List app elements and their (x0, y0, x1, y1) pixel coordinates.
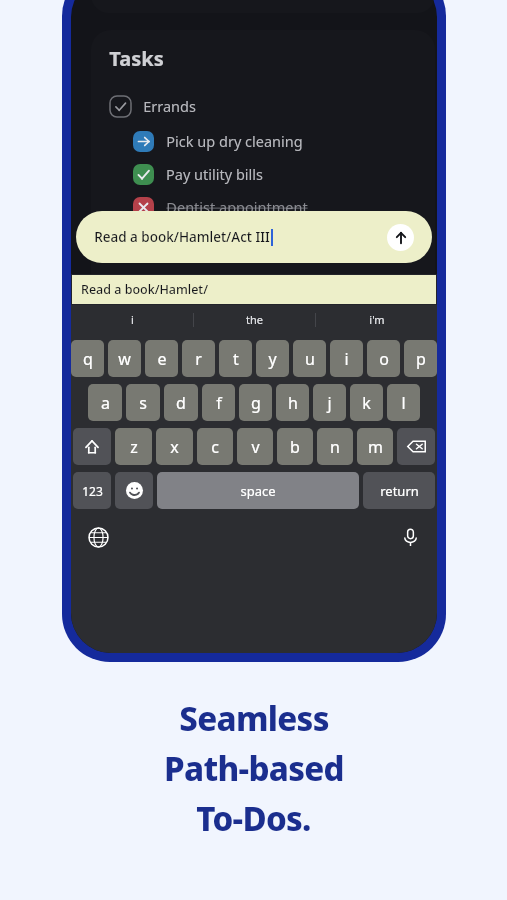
staticText: d (176, 392, 186, 414)
staticText: Errands (143, 96, 196, 116)
staticText: h (288, 392, 298, 414)
button[interactable]: r (182, 340, 215, 377)
button[interactable]: p (404, 340, 437, 377)
staticText: Tasks (109, 45, 164, 72)
button[interactable]: Emoji (115, 472, 153, 509)
staticText: the (246, 312, 263, 327)
button[interactable]: j (313, 384, 346, 421)
staticText: f (216, 392, 222, 414)
staticText: Seamless (179, 696, 329, 741)
button[interactable]: Submit task (387, 224, 414, 251)
staticText: z (130, 436, 138, 458)
button[interactable]: k (350, 384, 383, 421)
staticText: s (139, 392, 147, 414)
staticText: x (170, 436, 179, 458)
button[interactable]: w (108, 340, 141, 377)
staticText: Read a book/Hamlet/Act III (94, 228, 270, 246)
staticText: Pay utility bills (166, 164, 263, 184)
staticText: b (290, 436, 300, 458)
staticText: n (330, 436, 340, 458)
button[interactable]: g (239, 384, 272, 421)
staticText: c (211, 436, 219, 458)
staticText: space (240, 482, 276, 500)
button[interactable]: c (197, 428, 233, 465)
button[interactable]: q (71, 340, 104, 377)
staticText: return (380, 482, 419, 500)
button[interactable]: Backspace (397, 428, 435, 465)
button[interactable]: l (387, 384, 420, 421)
button[interactable]: return (363, 472, 435, 509)
staticText: Pick up dry cleaning (166, 131, 303, 151)
button[interactable]: i'm (316, 305, 437, 334)
button[interactable]: Errands (109, 95, 421, 117)
button[interactable]: space (157, 472, 359, 509)
button[interactable]: b (277, 428, 313, 465)
staticText: i'm (369, 312, 385, 327)
staticText: Read a book/Hamlet/ (81, 281, 208, 298)
button[interactable]: the (194, 305, 315, 334)
button[interactable]: Shift (73, 428, 111, 465)
button[interactable]: Pick up dry cleaning (132, 130, 421, 152)
button[interactable]: d (164, 384, 198, 421)
staticText: r (195, 348, 202, 370)
button[interactable]: z (115, 428, 152, 465)
button[interactable]: f (202, 384, 235, 421)
button[interactable]: i (71, 305, 193, 334)
staticText: m (368, 436, 383, 458)
button[interactable]: h (276, 384, 309, 421)
button[interactable]: n (317, 428, 353, 465)
staticText: 123 (82, 483, 103, 499)
button[interactable]: s (126, 384, 160, 421)
button[interactable]: Change keyboard (83, 522, 113, 552)
staticText: i (131, 312, 134, 327)
staticText: o (379, 348, 389, 370)
staticText: q (83, 348, 93, 370)
staticText: a (101, 392, 110, 414)
staticText: p (416, 348, 426, 370)
button[interactable]: 123 (73, 472, 111, 509)
staticText: e (157, 348, 167, 370)
button[interactable]: t (219, 340, 252, 377)
button[interactable]: Read a book/Hamlet/Act III (76, 211, 432, 263)
button[interactable]: x (156, 428, 193, 465)
staticText: Fitness goals (166, 230, 254, 250)
staticText: t (233, 348, 239, 370)
button[interactable]: u (293, 340, 326, 377)
button[interactable]: Fitness goals (132, 229, 421, 251)
button[interactable]: o (367, 340, 400, 377)
staticText: w (118, 348, 131, 370)
staticText: v (251, 436, 260, 458)
staticText: i (344, 348, 349, 370)
staticText: g (251, 392, 261, 414)
staticText: y (268, 348, 277, 370)
button[interactable]: Dentist appointment (132, 196, 421, 218)
button[interactable]: e (145, 340, 178, 377)
staticText: k (362, 392, 371, 414)
staticText: Path-based (164, 746, 344, 791)
button[interactable]: v (237, 428, 273, 465)
button[interactable]: Pay utility bills (132, 163, 421, 185)
staticText: l (401, 392, 406, 414)
button[interactable]: Voice input (395, 522, 425, 552)
staticText: Dentist appointment (166, 197, 308, 217)
staticText: j (327, 392, 332, 414)
button[interactable]: a (88, 384, 122, 421)
staticText: To-Dos. (196, 796, 311, 841)
staticText: u (305, 348, 315, 370)
button[interactable]: Read a book/Hamlet/ (71, 274, 437, 305)
button[interactable]: y (256, 340, 289, 377)
button[interactable]: i (330, 340, 363, 377)
button[interactable]: m (357, 428, 393, 465)
